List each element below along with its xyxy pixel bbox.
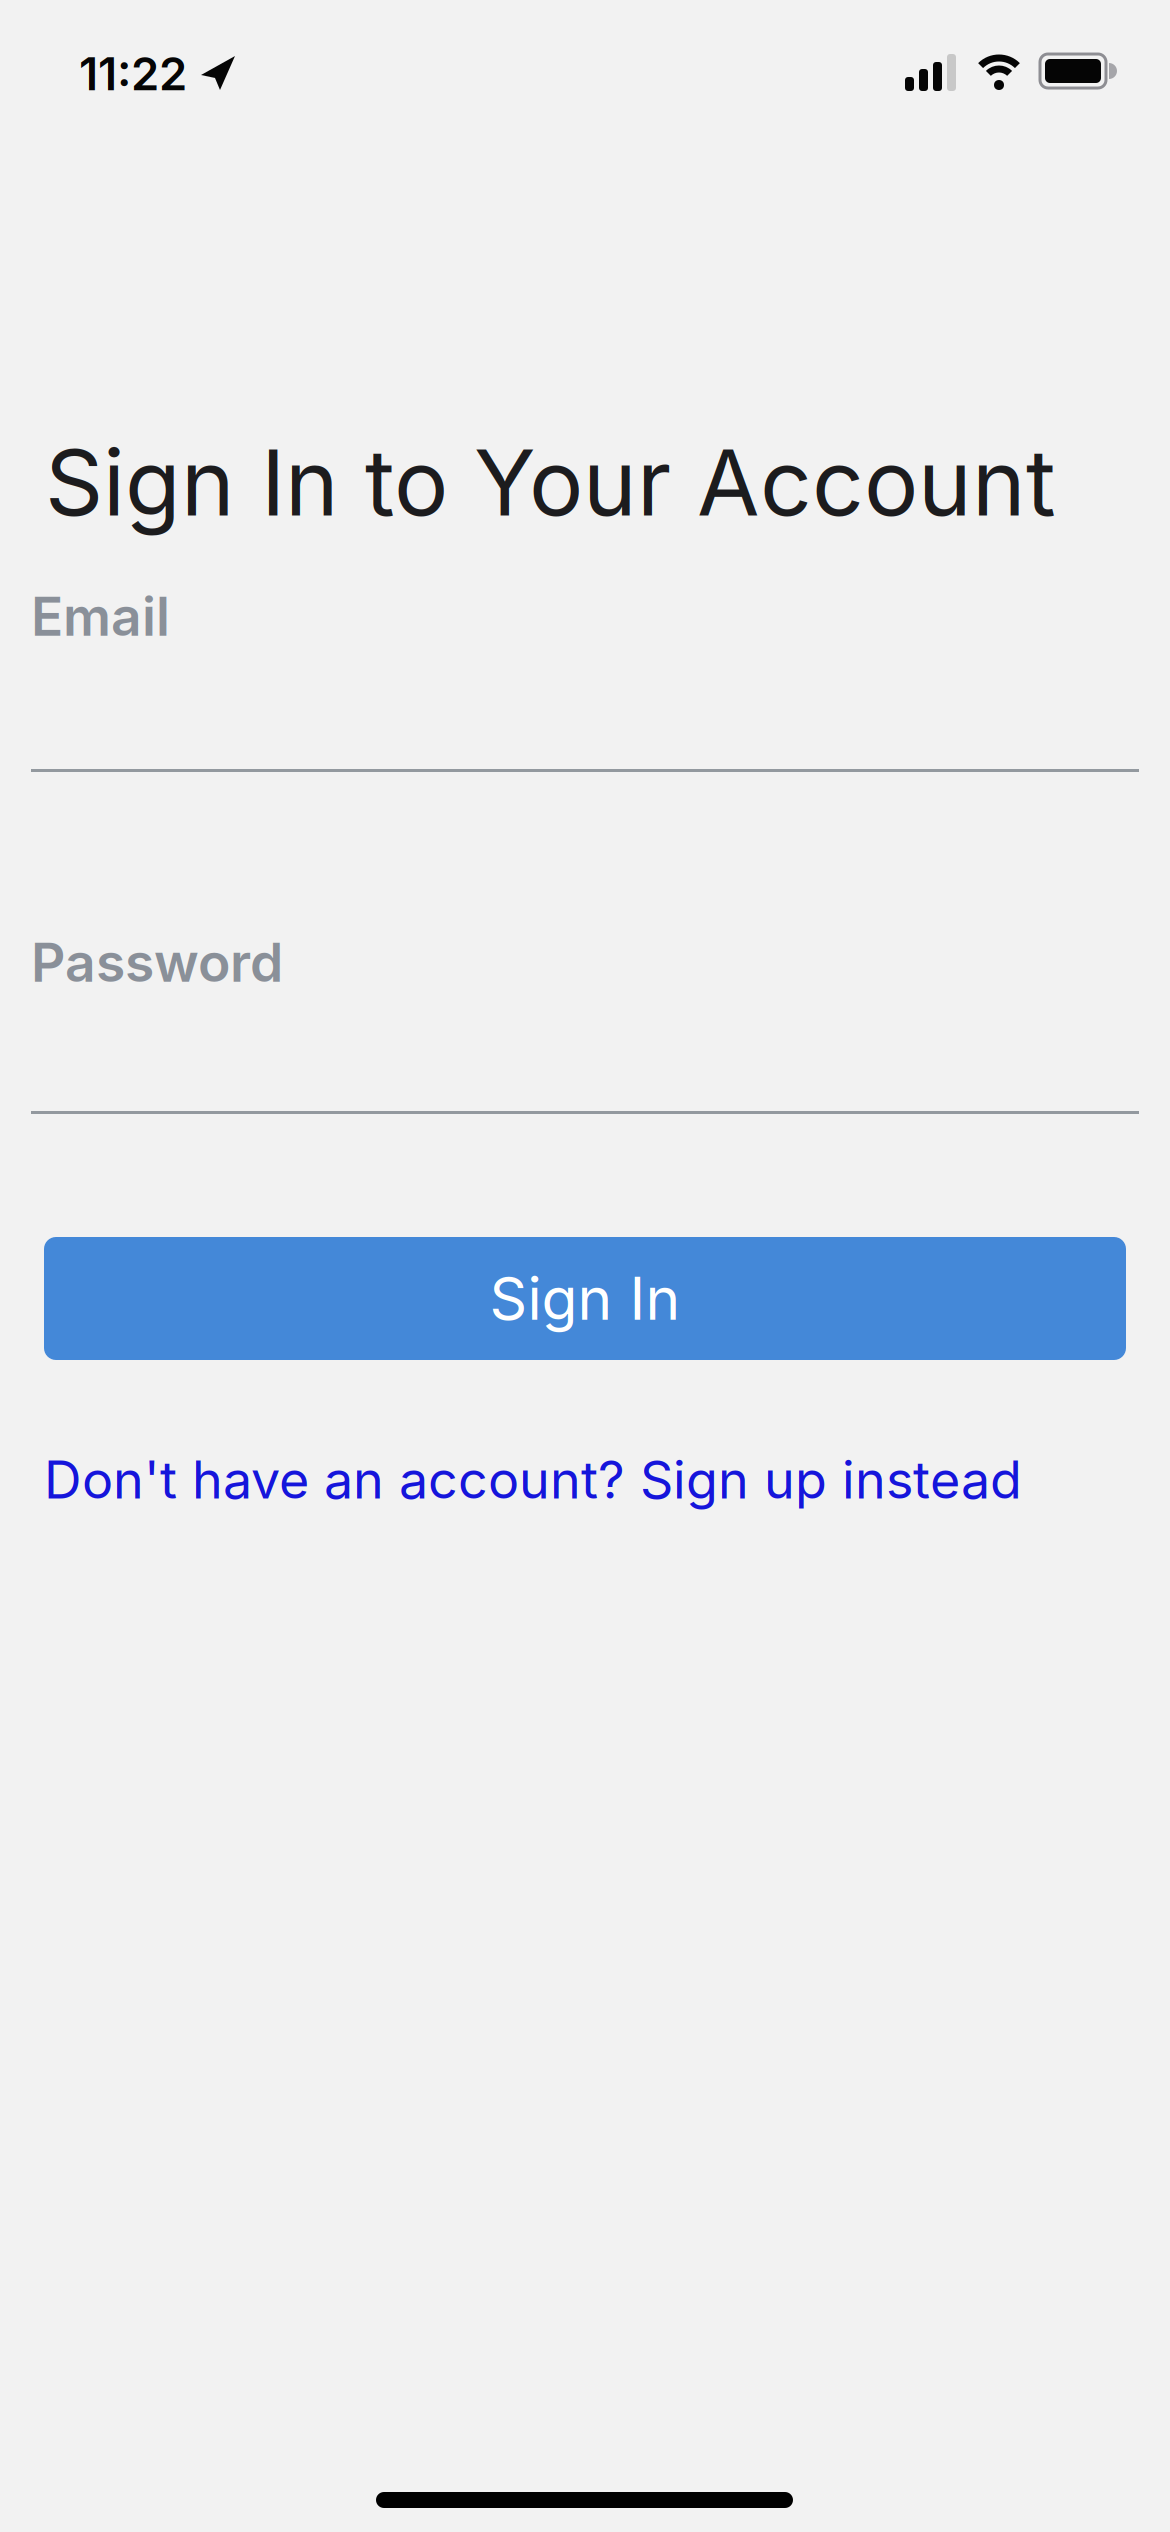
button[interactable]: Password	[31, 931, 1139, 1114]
button[interactable]: Sign In	[44, 1237, 1126, 1360]
staticText: 11:22	[79, 47, 187, 100]
staticText: Sign In to Your Account	[45, 429, 1056, 536]
button[interactable]: Don't have an account? Sign up instead	[44, 1449, 1022, 1510]
staticText: Password	[31, 931, 283, 994]
staticText: Don't have an account? Sign up instead	[44, 1449, 1022, 1510]
staticText: Sign In	[489, 1264, 680, 1333]
button[interactable]: Email	[31, 585, 1139, 772]
staticText: Email	[31, 585, 170, 648]
